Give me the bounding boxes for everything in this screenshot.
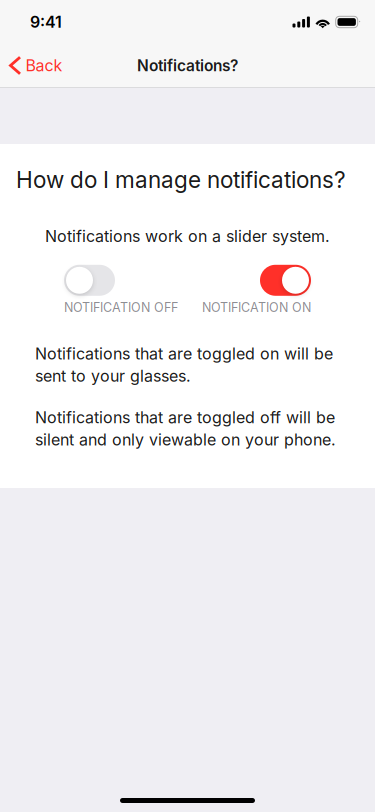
staticText: Notifications that are toggled on will b… [35, 344, 333, 386]
staticText: NOTIFICATION ON [202, 300, 311, 315]
staticText: Notifications that are toggled off will … [35, 408, 336, 449]
button[interactable]: Back [0, 44, 72, 87]
staticText: Notifications work on a slider system. [45, 226, 330, 246]
staticText: 9:41 [30, 12, 62, 32]
staticText: How do I manage notifications? [16, 166, 346, 193]
staticText: Back [25, 56, 62, 75]
staticText: Notifications? [137, 56, 238, 75]
button[interactable]: NOTIFICATION ON [202, 265, 311, 315]
button[interactable]: NOTIFICATION OFF [64, 265, 178, 315]
staticText: NOTIFICATION OFF [64, 300, 178, 315]
